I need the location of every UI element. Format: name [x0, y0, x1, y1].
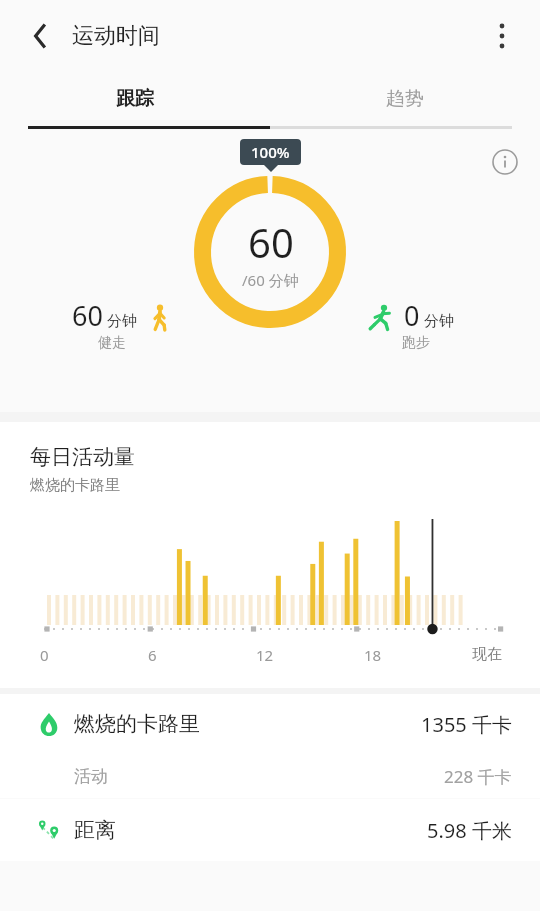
- staticText: 跑步: [402, 334, 430, 352]
- button[interactable]: Back: [18, 14, 62, 58]
- button[interactable]: More options: [480, 14, 524, 58]
- staticText: 运动时间: [72, 22, 160, 50]
- staticText: 分钟: [107, 312, 137, 331]
- staticText: 现在: [472, 645, 502, 664]
- staticText: 分钟: [424, 312, 454, 331]
- button[interactable]: Info: [486, 143, 524, 181]
- button[interactable]: 距离: [0, 799, 540, 861]
- staticText: 5.98 千米: [427, 817, 512, 844]
- staticText: 60: [72, 297, 103, 334]
- staticText: 1355 千卡: [421, 711, 512, 738]
- staticText: 0: [40, 645, 49, 665]
- button[interactable]: 趋势: [270, 72, 540, 126]
- staticText: 距离: [74, 817, 116, 843]
- staticText: 60: [248, 215, 294, 269]
- staticText: 燃烧的卡路里: [30, 476, 120, 495]
- staticText: 健走: [98, 334, 126, 352]
- staticText: 18: [364, 645, 382, 665]
- staticText: 6: [148, 645, 157, 665]
- button[interactable]: 每日活动量: [0, 422, 540, 688]
- staticText: /60 分钟: [242, 270, 299, 290]
- button[interactable]: 跟踪: [0, 72, 270, 126]
- staticText: 跟踪: [116, 87, 154, 111]
- staticText: 趋势: [386, 87, 424, 111]
- staticText: 活动: [74, 766, 108, 787]
- staticText: 每日活动量: [30, 444, 135, 470]
- staticText: 0: [404, 297, 420, 334]
- staticText: 228 千卡: [444, 765, 512, 788]
- button[interactable]: 燃烧的卡路里: [0, 694, 540, 798]
- staticText: 100%: [251, 142, 290, 162]
- staticText: 燃烧的卡路里: [74, 711, 200, 737]
- staticText: 12: [256, 645, 274, 665]
